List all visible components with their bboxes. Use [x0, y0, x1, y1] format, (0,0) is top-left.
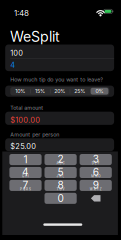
staticText: How much tip do you want to leave?	[10, 76, 103, 83]
staticText: $25.00	[10, 142, 36, 151]
staticText: 20%	[54, 88, 65, 94]
staticText: Amount per person	[10, 131, 59, 138]
button[interactable]: 3	[80, 154, 112, 165]
staticText: 6	[93, 166, 99, 178]
staticText: M N O	[91, 174, 100, 178]
staticText: 100	[10, 49, 23, 58]
button[interactable]: Delete	[80, 193, 112, 204]
button[interactable]: 20%	[50, 87, 70, 95]
staticText: 0	[58, 192, 64, 204]
button[interactable]: 0%	[90, 87, 109, 95]
staticText: 3	[93, 153, 99, 165]
staticText: P Q R S	[20, 187, 31, 191]
button[interactable]: 9	[80, 180, 112, 191]
staticText: A B C	[57, 161, 65, 165]
button[interactable]: 6	[80, 167, 112, 178]
button[interactable]: 0	[44, 193, 77, 204]
staticText: 25%	[74, 88, 85, 94]
staticText: 10%	[15, 88, 25, 94]
button[interactable]: 2	[44, 154, 77, 165]
staticText: $100.00	[10, 116, 40, 125]
staticText: 4	[10, 61, 15, 70]
staticText: D E F	[92, 161, 100, 165]
staticText: Total amount	[10, 104, 43, 111]
staticText: W X Y Z	[90, 187, 102, 191]
staticText: 7	[22, 179, 28, 191]
staticText: 4	[22, 166, 29, 178]
staticText: J K L	[57, 174, 65, 178]
button[interactable]: 4	[9, 167, 42, 178]
staticText: 2	[58, 153, 64, 165]
staticText: 1	[23, 153, 27, 166]
staticText: T U V	[57, 187, 65, 191]
button[interactable]: 8	[44, 180, 77, 191]
button[interactable]: 7	[9, 180, 42, 191]
button[interactable]: 1	[9, 154, 42, 165]
button[interactable]: 10%	[10, 87, 30, 95]
staticText: G H I	[22, 174, 29, 178]
staticText: 9	[93, 179, 99, 191]
button[interactable]: 15%	[30, 87, 50, 95]
staticText: 8	[58, 179, 64, 191]
staticText: 15%	[35, 88, 45, 94]
staticText: 5	[58, 166, 64, 178]
button[interactable]: 25%	[70, 87, 90, 95]
staticText: 0%	[95, 88, 103, 94]
staticText: 1:48	[14, 8, 29, 18]
button[interactable]: 5	[44, 167, 77, 178]
staticText: WeSplit	[10, 28, 60, 45]
